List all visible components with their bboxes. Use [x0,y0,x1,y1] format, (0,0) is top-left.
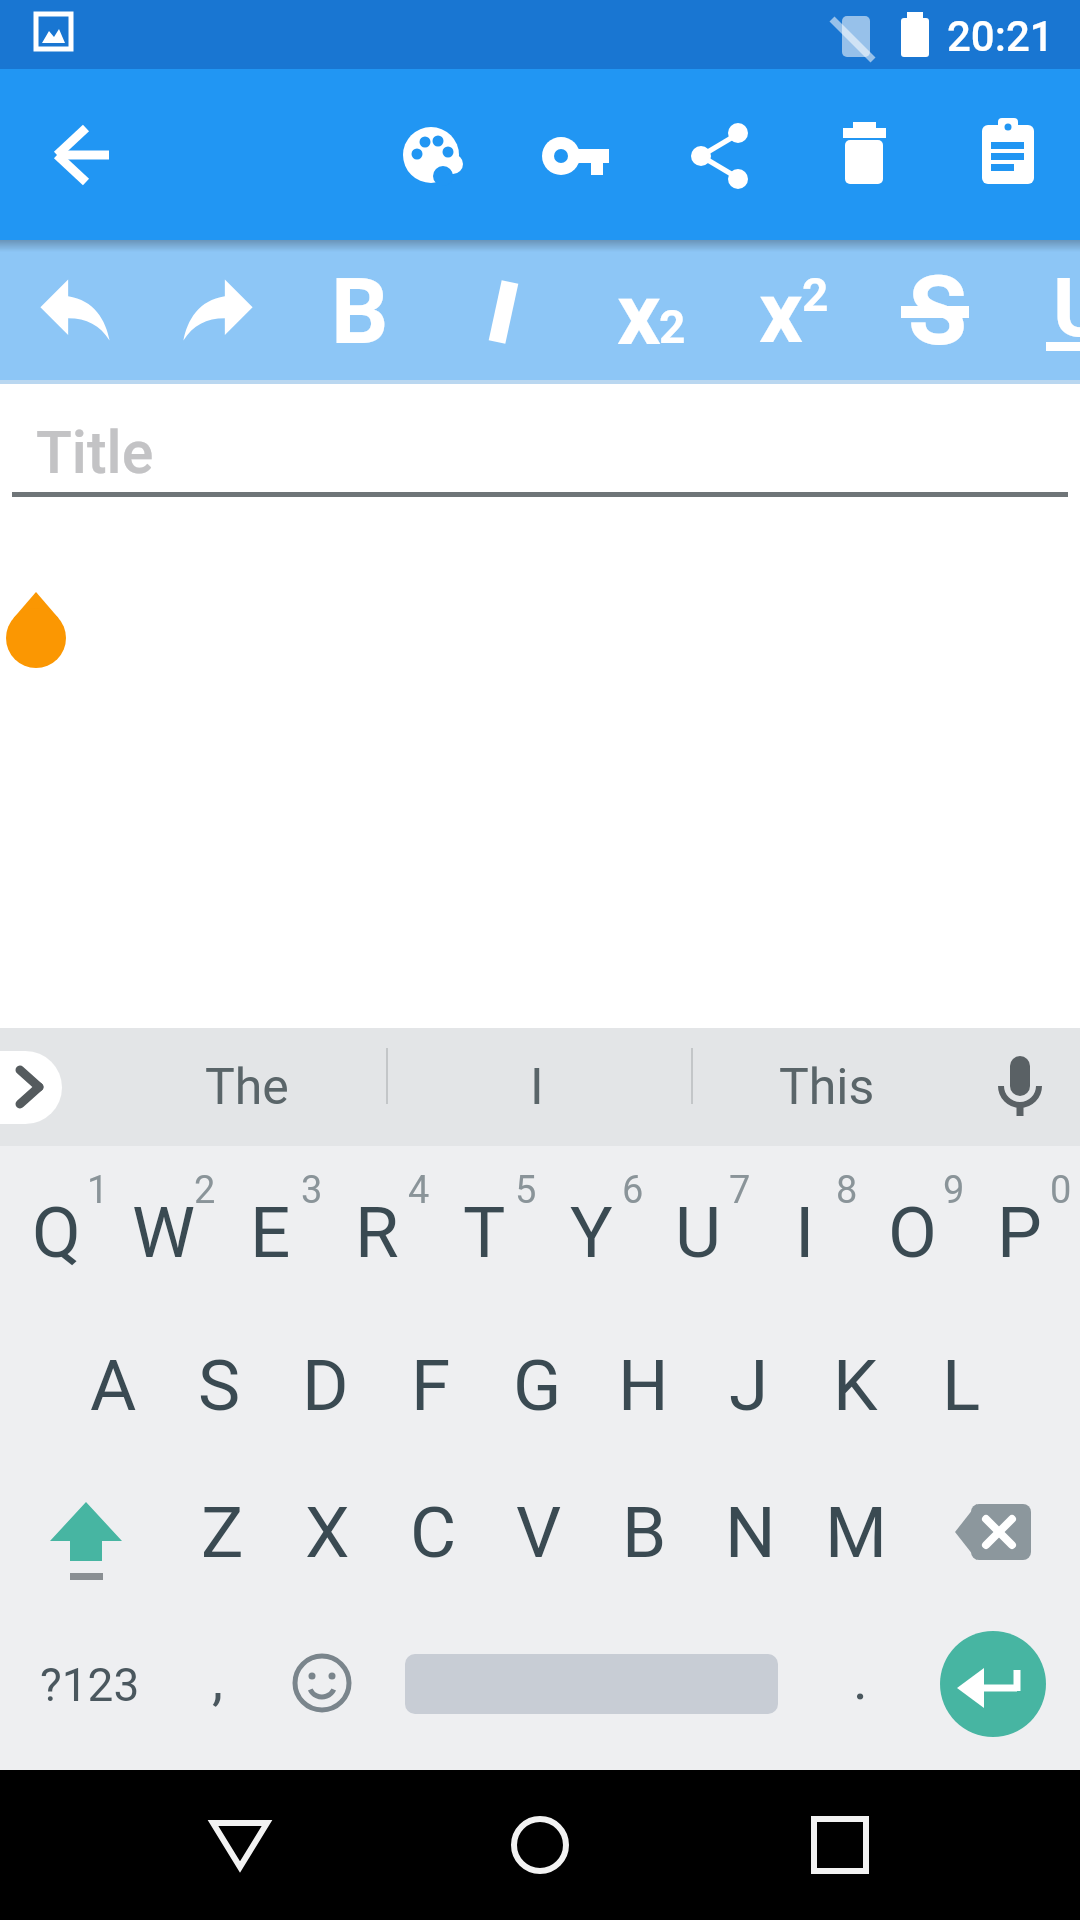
staticText: x [617,264,661,364]
staticText: 8 [836,1168,858,1208]
staticText: O [888,1191,937,1274]
staticText: 20:21 [947,12,1054,61]
button[interactable]: X [274,1457,380,1607]
staticText: X [305,1491,350,1574]
button[interactable] [940,1457,1060,1607]
staticText: S [908,255,968,367]
button[interactable]: F [378,1310,484,1460]
staticText: A [90,1344,137,1427]
staticText: K [833,1344,878,1427]
staticText: V [516,1491,562,1574]
button[interactable] [384,107,480,203]
staticText: U [675,1191,722,1274]
button[interactable]: Title [14,408,1068,498]
button[interactable]: D [272,1310,378,1460]
button[interactable] [760,1790,920,1902]
staticText: B [331,260,389,365]
button[interactable] [960,107,1056,203]
staticText: C [410,1491,457,1574]
staticText: , [212,1647,224,1713]
button[interactable] [460,1790,620,1902]
button[interactable]: A [60,1310,166,1460]
button[interactable]: G [484,1310,590,1460]
staticText: B [622,1491,667,1574]
button[interactable] [960,1040,1080,1134]
staticText: 5 [515,1168,537,1208]
staticText: x [759,262,803,362]
button[interactable]: T [431,1157,537,1307]
button[interactable]: x [731,262,831,362]
button[interactable]: U [1030,252,1080,364]
button[interactable]: W [110,1157,216,1307]
staticText: 6 [622,1168,644,1208]
staticText: Q [32,1191,81,1274]
staticText: H [618,1344,669,1427]
button[interactable]: C [380,1457,486,1607]
button[interactable]: ?123 [30,1610,150,1760]
button[interactable] [270,1610,374,1760]
button[interactable] [672,107,768,203]
button[interactable] [938,1629,1048,1739]
button[interactable] [444,250,564,374]
button[interactable] [157,250,277,374]
button[interactable]: V [486,1457,592,1607]
button[interactable]: The [120,1056,374,1118]
staticText: F [411,1344,451,1427]
button[interactable]: E [217,1157,323,1307]
button[interactable]: L [908,1310,1014,1460]
button[interactable]: U [645,1157,751,1307]
button[interactable]: K [802,1310,908,1460]
staticText: U [1053,260,1080,356]
button[interactable]: Z [169,1457,275,1607]
button[interactable] [160,1790,320,1902]
staticText: ?123 [40,1658,140,1712]
staticText: This [779,1058,875,1117]
staticText: 1 [87,1168,109,1208]
button[interactable]: Y [538,1157,644,1307]
button[interactable] [0,1040,100,1134]
button[interactable] [15,250,135,374]
button[interactable]: P [966,1157,1072,1307]
staticText: L [942,1344,981,1427]
button[interactable]: B [310,256,410,368]
staticText: Y [570,1191,613,1274]
button[interactable]: M [803,1457,909,1607]
button[interactable] [816,107,912,203]
staticText: R [355,1191,399,1274]
button[interactable]: , [168,1625,268,1735]
staticText: 0 [1050,1168,1072,1208]
staticText: G [513,1344,562,1427]
button[interactable]: I [752,1157,858,1307]
staticText: S [198,1344,241,1427]
button[interactable]: H [590,1310,696,1460]
staticText: 7 [729,1168,751,1208]
button[interactable]: J [696,1310,802,1460]
button[interactable]: R [324,1157,430,1307]
button[interactable]: O [859,1157,965,1307]
staticText: I [795,1191,815,1274]
button[interactable]: N [697,1457,803,1607]
staticText: J [729,1344,769,1427]
button[interactable]: S [166,1310,272,1460]
button[interactable]: I [410,1056,664,1118]
staticText: 2 [802,268,829,322]
staticText: The [205,1058,289,1117]
button[interactable]: . [810,1625,910,1735]
button[interactable]: This [700,1056,954,1118]
button[interactable] [528,107,624,203]
staticText: N [725,1491,776,1574]
button[interactable]: Q [3,1157,109,1307]
button[interactable]: x [589,264,689,364]
staticText: D [302,1344,349,1427]
button[interactable]: B [591,1457,697,1607]
staticText: E [250,1191,291,1274]
staticText: 2 [194,1168,216,1208]
staticText: . [853,1647,868,1713]
button[interactable] [36,107,132,203]
button[interactable] [30,1457,160,1607]
staticText: M [825,1491,887,1574]
staticText: Z [201,1491,244,1574]
button[interactable]: S [888,255,988,367]
staticText: 2 [659,300,686,354]
